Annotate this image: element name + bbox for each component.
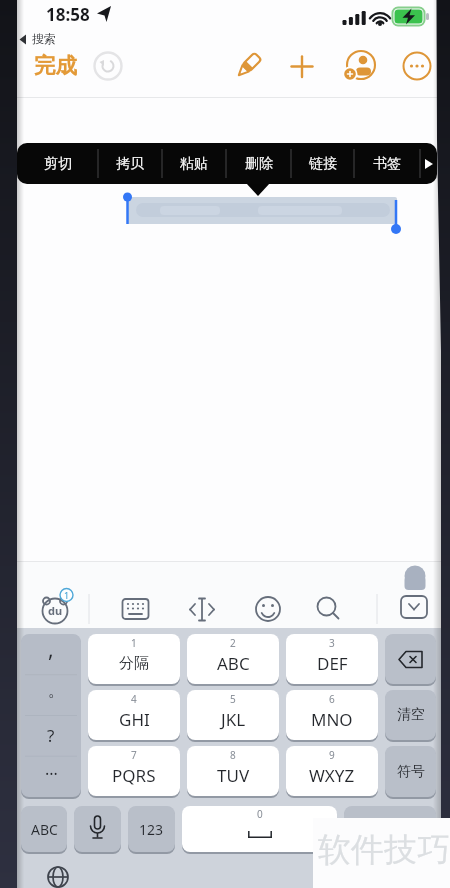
staticText: , [48, 635, 54, 664]
button[interactable] [94, 52, 122, 80]
button[interactable]: 3 [286, 634, 378, 684]
staticText: PQRS [112, 764, 156, 787]
staticText: 软件技巧 [318, 829, 450, 871]
button[interactable] [346, 51, 376, 81]
button[interactable]: 5 [187, 690, 279, 740]
button[interactable]: 清空 [385, 690, 436, 740]
button[interactable]: ABC [21, 806, 67, 852]
button[interactable] [36, 590, 74, 626]
staticText: 链接 [309, 155, 337, 173]
staticText: 6 [329, 692, 335, 706]
staticText: 搜索 [32, 31, 56, 46]
staticText: ABC [31, 820, 58, 839]
button[interactable]: 符号 [385, 746, 436, 797]
staticText: 拷贝 [116, 155, 144, 173]
button[interactable]: 7 [88, 746, 180, 796]
button[interactable] [398, 593, 430, 621]
button[interactable]: 8 [187, 746, 279, 796]
button[interactable]: 粘贴 [163, 143, 225, 184]
staticText: MNO [311, 708, 353, 731]
staticText: 1 [131, 636, 137, 650]
staticText: ? [47, 724, 55, 747]
staticText: ... [45, 758, 58, 780]
staticText: 完成 [34, 52, 77, 79]
button[interactable]: 拷贝 [99, 143, 161, 184]
staticText: 4 [131, 692, 137, 706]
staticText: 8 [230, 748, 236, 762]
button[interactable]: 删除 [227, 143, 290, 184]
staticText: JKL [221, 708, 246, 731]
button[interactable] [234, 52, 262, 80]
staticText: 3 [329, 636, 335, 650]
staticText: 分隔 [119, 654, 149, 673]
staticText: 清空 [397, 706, 425, 724]
staticText: 123 [139, 820, 164, 839]
button[interactable] [288, 52, 316, 80]
staticText: WXYZ [309, 764, 355, 787]
button[interactable]: 4 [88, 690, 180, 740]
button[interactable] [420, 143, 437, 184]
staticText: 剪切 [44, 155, 72, 173]
button[interactable] [403, 52, 431, 80]
staticText: 7 [131, 748, 137, 762]
staticText: 1 [64, 589, 70, 601]
button[interactable] [186, 594, 218, 624]
staticText: 书签 [373, 155, 401, 173]
staticText: 符号 [397, 763, 425, 781]
staticText: 0 [257, 807, 263, 821]
staticText: 2 [230, 636, 236, 650]
staticText: 。 [48, 680, 65, 701]
button[interactable]: 6 [286, 690, 378, 740]
button[interactable]: 0 [182, 806, 337, 852]
staticText: du [48, 603, 63, 618]
button[interactable] [252, 593, 284, 625]
staticText: 5 [230, 692, 236, 706]
staticText: 18:58 [46, 3, 90, 26]
button[interactable]: 书签 [355, 143, 419, 184]
button[interactable] [385, 634, 436, 684]
staticText: 粘贴 [180, 155, 208, 173]
button[interactable]: 完成 [27, 50, 83, 81]
button[interactable]: 搜索 [28, 28, 60, 48]
button[interactable] [118, 594, 152, 624]
button[interactable]: 2 [187, 634, 279, 684]
staticText: 删除 [245, 155, 273, 173]
staticText: TUV [217, 764, 250, 787]
staticText: GHI [119, 708, 150, 731]
button[interactable]: 123 [128, 806, 175, 852]
button[interactable]: , [21, 634, 81, 797]
staticText: ABC [217, 652, 250, 675]
button[interactable] [344, 806, 436, 852]
staticText: DEF [317, 652, 348, 675]
button[interactable]: 1 [88, 634, 180, 684]
button[interactable] [311, 592, 343, 624]
staticText: 9 [329, 748, 335, 762]
button[interactable] [74, 806, 121, 852]
button[interactable]: 剪切 [27, 143, 88, 184]
button[interactable]: 9 [286, 746, 378, 796]
button[interactable]: 链接 [292, 143, 353, 184]
